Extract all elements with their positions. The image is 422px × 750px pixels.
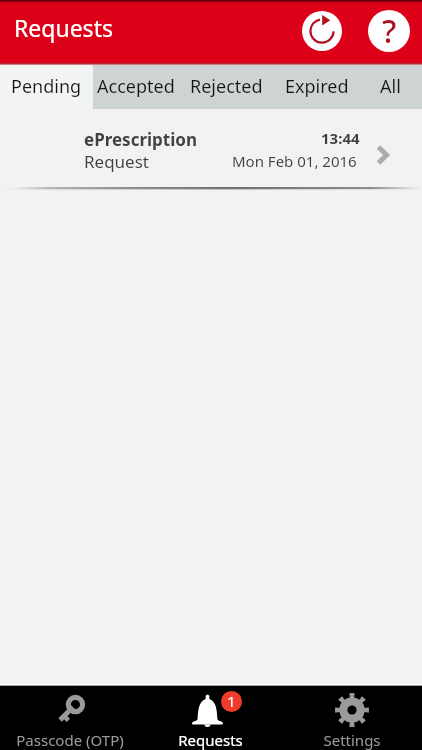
button[interactable]: Passcode (OTP) — [0, 686, 140, 750]
staticText: ? — [382, 9, 397, 51]
button[interactable]: 1 — [140, 686, 281, 750]
button[interactable]: Expired — [275, 65, 358, 109]
button[interactable]: Refresh — [298, 7, 346, 55]
staticText: Rejected — [190, 74, 263, 99]
staticText: 13:44 — [321, 128, 360, 148]
button[interactable]: Help — [365, 7, 413, 55]
staticText: 1 — [227, 691, 236, 711]
staticText: Requests — [178, 730, 243, 750]
staticText: Requests — [14, 12, 113, 43]
staticText: Request — [84, 150, 149, 173]
button[interactable]: Accepted — [93, 65, 178, 109]
staticText: Pending — [11, 74, 82, 99]
staticText: Passcode (OTP) — [16, 730, 124, 750]
staticText: Expired — [285, 74, 349, 99]
button[interactable]: ePrescription — [0, 109, 422, 190]
button[interactable]: All — [358, 65, 422, 109]
button[interactable]: Rejected — [178, 65, 275, 109]
button[interactable]: Settings — [281, 686, 422, 750]
button[interactable]: Pending — [0, 65, 93, 109]
staticText: Accepted — [97, 74, 175, 99]
staticText: Settings — [323, 730, 381, 750]
staticText: All — [380, 74, 401, 99]
staticText: Mon Feb 01, 2016 — [232, 151, 357, 171]
staticText: ePrescription — [84, 128, 197, 151]
